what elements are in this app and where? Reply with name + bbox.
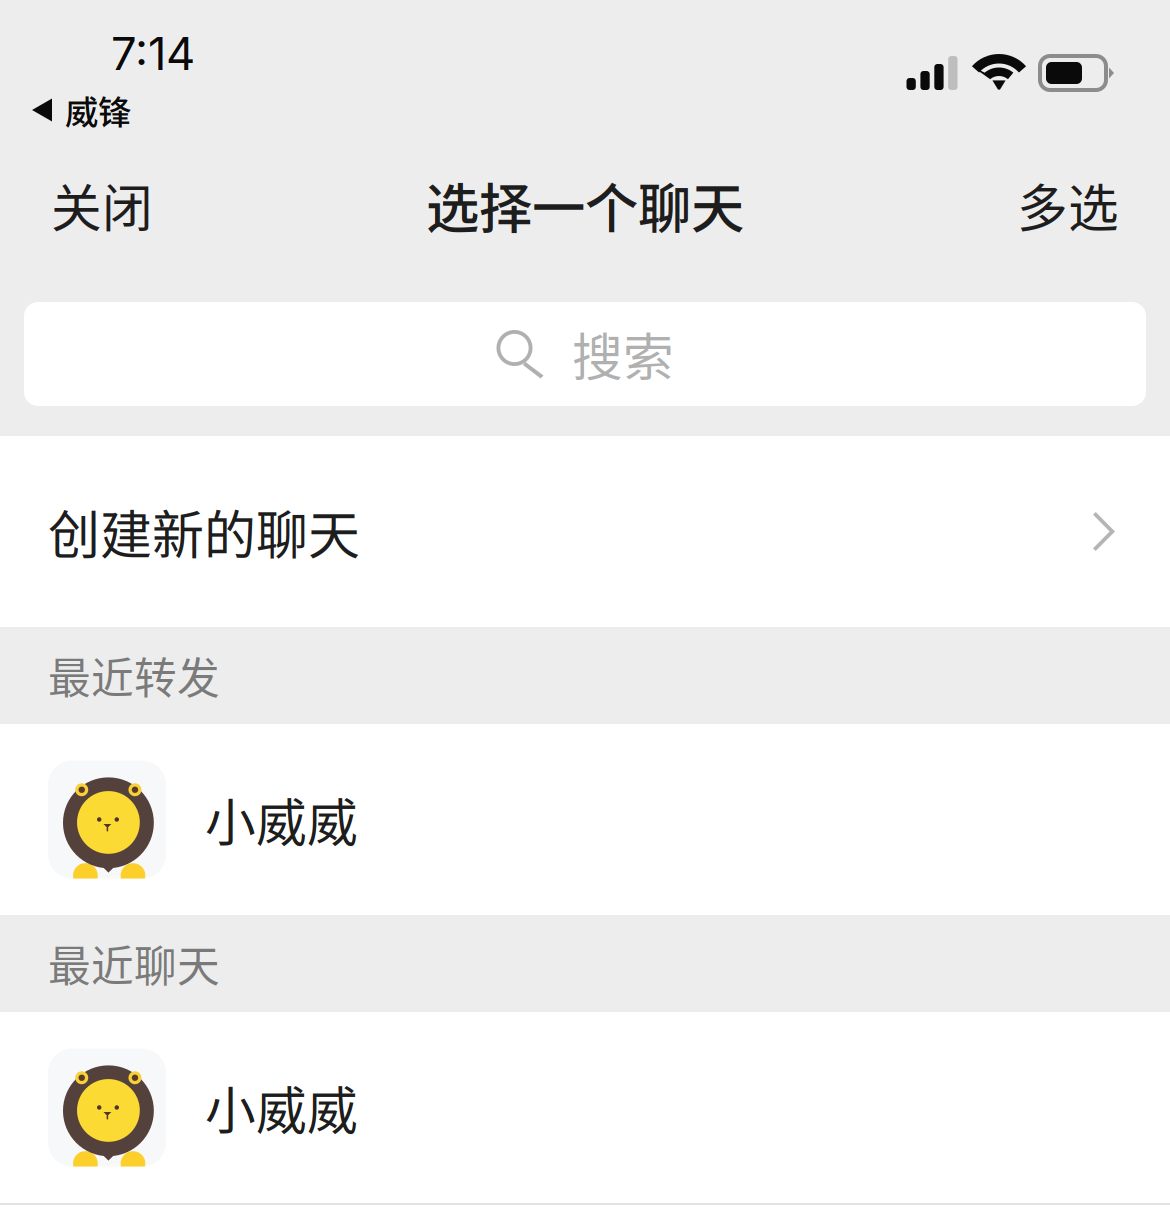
staticText: 关闭 (51, 168, 153, 242)
button[interactable]: 小威威 (0, 724, 1170, 915)
button[interactable]: 关闭 (0, 150, 183, 260)
staticText: 多选 (1017, 168, 1119, 242)
button[interactable]: 搜索 (24, 302, 1146, 406)
button[interactable]: 创建新的聊天 (0, 436, 1170, 627)
staticText: 创建新的聊天 (48, 494, 360, 569)
staticText: 小威威 (205, 783, 358, 856)
staticText: 搜索 (572, 317, 674, 391)
button[interactable]: 多选 (987, 150, 1170, 260)
staticText: 选择一个聊天 (426, 166, 744, 244)
staticText: 最近聊天 (48, 933, 220, 994)
staticText: 小威威 (205, 1071, 358, 1144)
button[interactable]: 小威威 (0, 1012, 1170, 1203)
staticText: 威锋 (65, 86, 131, 134)
staticText: 7:14 (111, 26, 195, 81)
button[interactable]: 威锋 (0, 93, 1170, 127)
staticText: 最近转发 (48, 645, 220, 706)
